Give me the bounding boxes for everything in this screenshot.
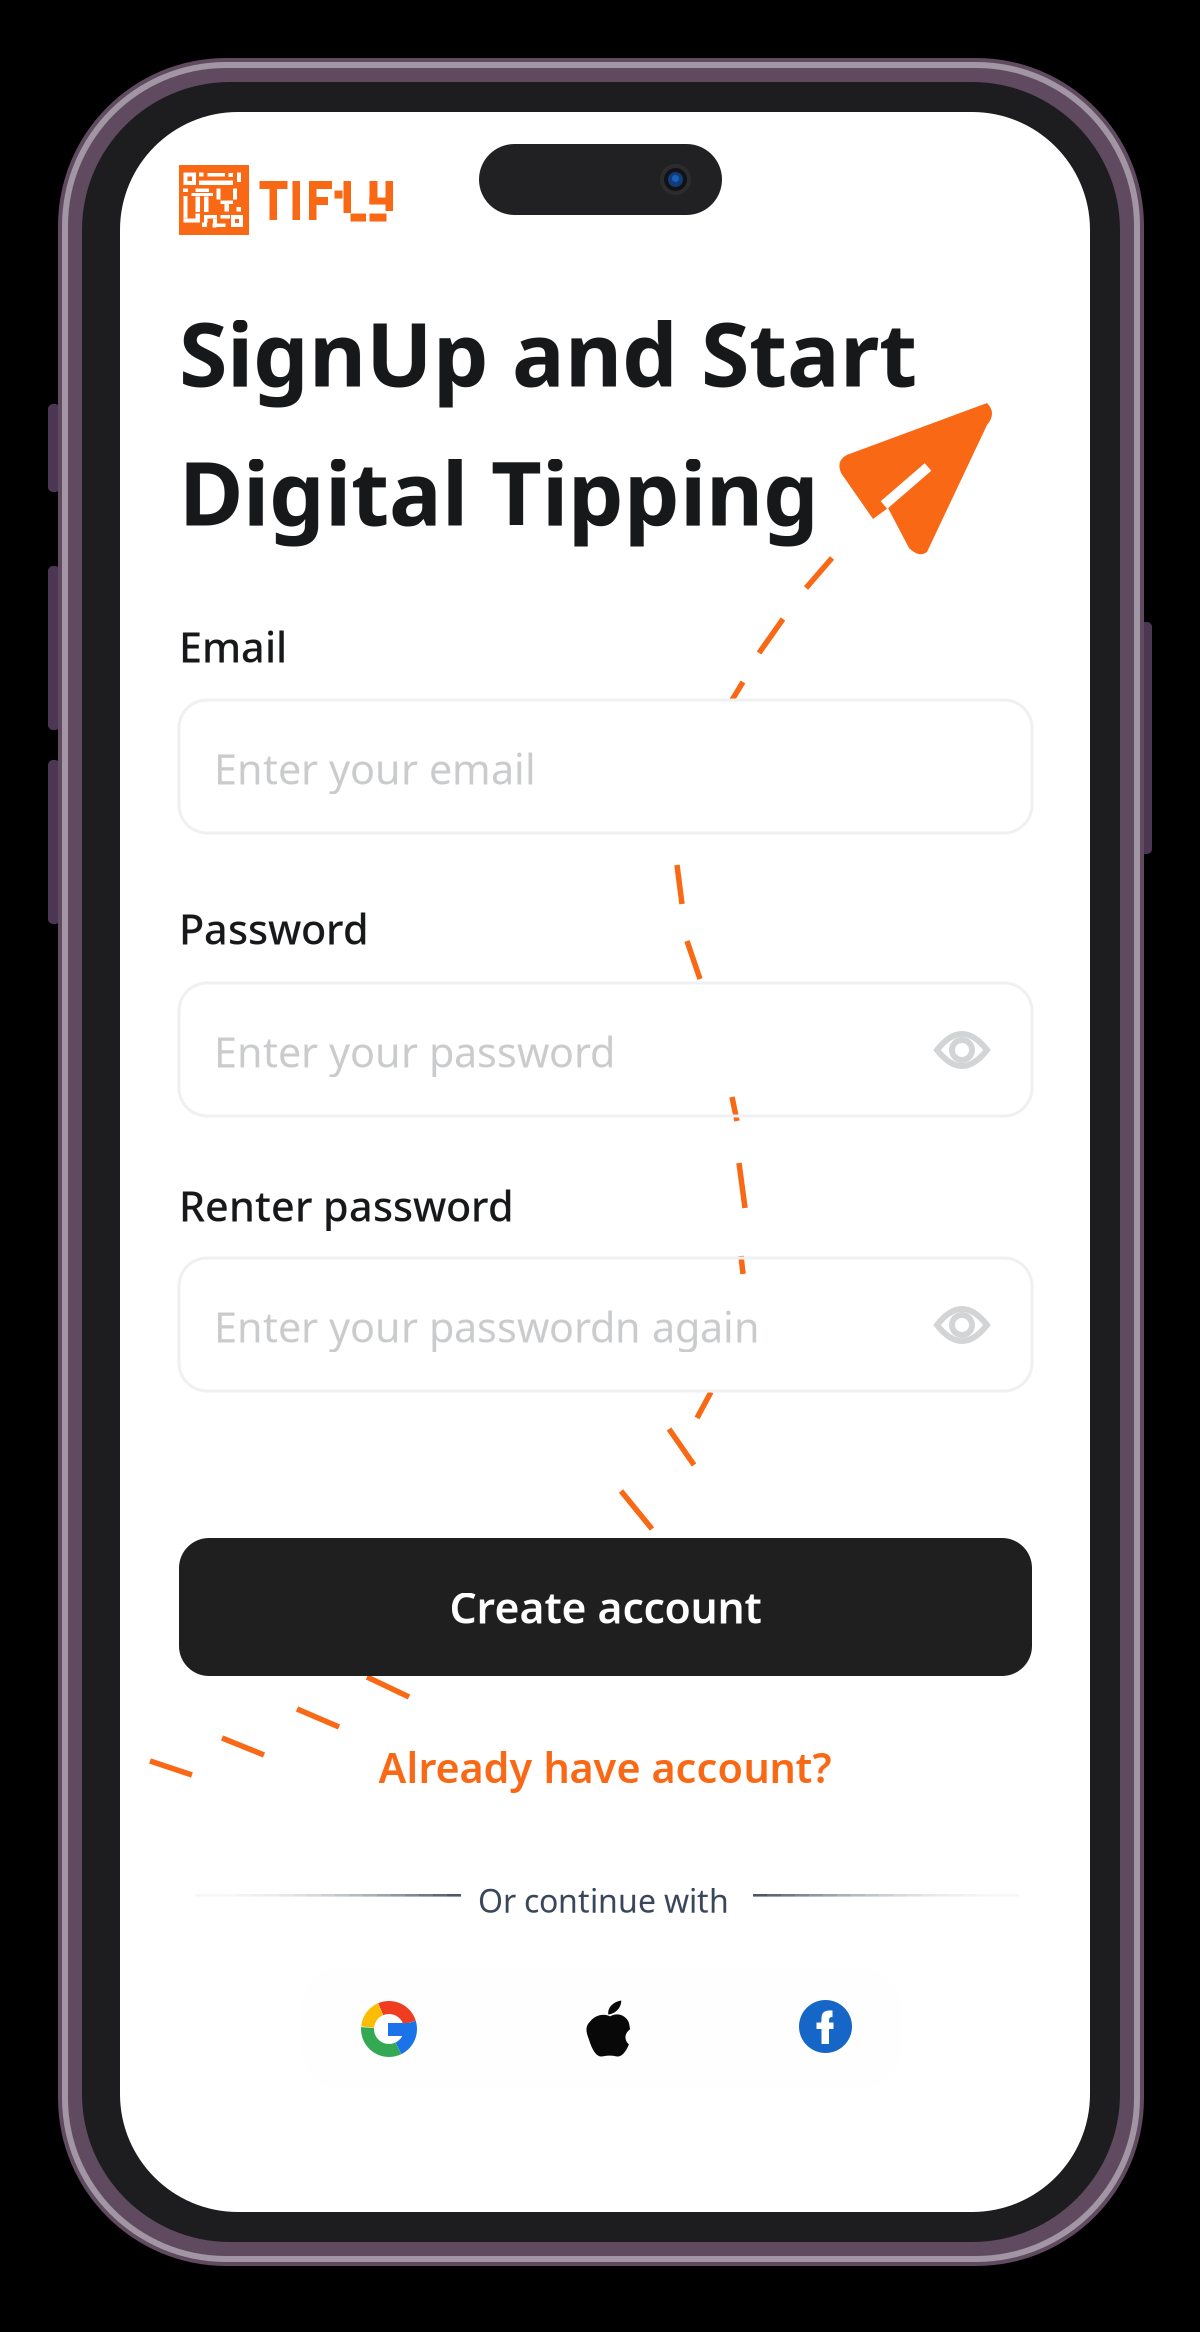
staticText: Enter your password bbox=[214, 1024, 615, 1079]
staticText: Already have account? bbox=[378, 1740, 831, 1794]
button[interactable]: Continue with Google bbox=[361, 2001, 417, 2057]
button[interactable]: Enter your email bbox=[179, 700, 1032, 833]
staticText: Enter your passwordn again bbox=[214, 1299, 760, 1354]
button[interactable]: Already have account? bbox=[378, 1740, 831, 1794]
staticText: Or continue with bbox=[478, 1879, 729, 1921]
staticText: SignUp and Start bbox=[179, 294, 917, 411]
button[interactable]: Enter your password bbox=[179, 983, 1032, 1116]
staticText: Password bbox=[179, 901, 369, 956]
staticText: Create account bbox=[449, 1579, 761, 1635]
staticText: Renter password bbox=[179, 1178, 514, 1233]
staticText: Email bbox=[179, 619, 287, 674]
staticText: Enter your email bbox=[214, 741, 536, 796]
button[interactable]: Continue with Apple bbox=[585, 2000, 635, 2060]
button[interactable]: Create account bbox=[179, 1538, 1032, 1676]
button[interactable]: Continue with Facebook bbox=[799, 2000, 852, 2053]
button[interactable]: Enter your passwordn again bbox=[179, 1258, 1032, 1391]
staticText: Digital Tipping bbox=[179, 433, 819, 550]
